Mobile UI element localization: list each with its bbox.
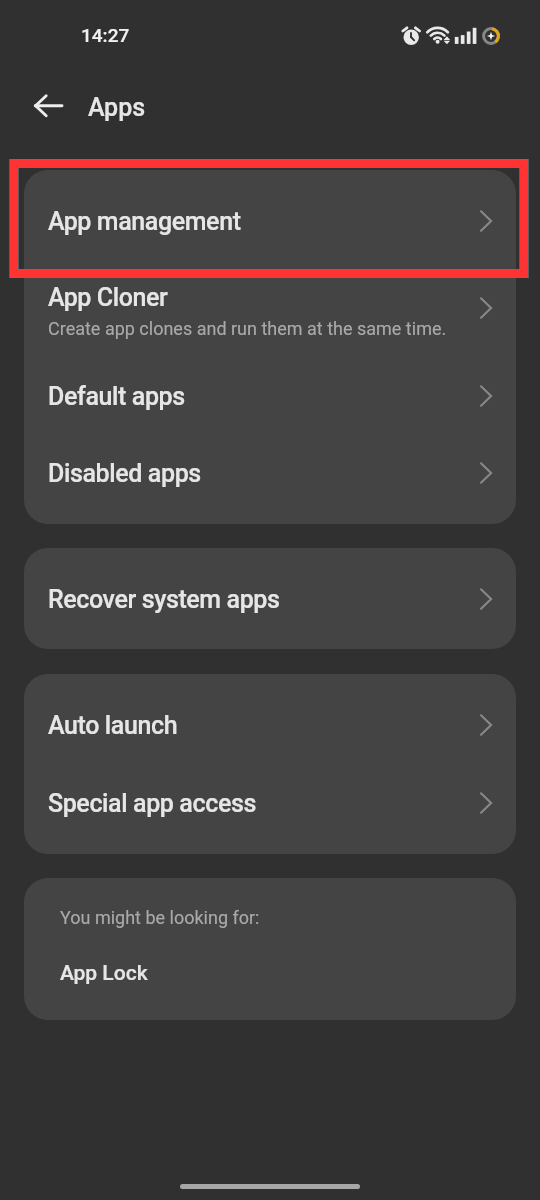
staticText: Recover system apps [48,585,280,614]
staticText: App Lock [60,961,148,986]
button[interactable]: Back [24,81,72,129]
staticText: Create app clones and run them at the sa… [48,318,447,339]
button[interactable]: App Cloner [24,260,516,355]
staticText: You might be looking for: [60,907,260,928]
staticText: App management [48,207,241,236]
button[interactable]: Special app access [24,764,516,842]
staticText: Special app access [48,789,256,818]
button[interactable]: Auto launch [24,686,516,764]
button[interactable]: You might be looking for: [24,878,516,1020]
button[interactable]: Recover system apps [24,560,516,638]
staticText: 14:27 [81,24,130,46]
staticText: Disabled apps [48,459,201,488]
staticText: App Cloner [48,283,168,312]
button[interactable]: Default apps [24,357,516,435]
staticText: Default apps [48,382,185,411]
staticText: Auto launch [48,711,178,740]
button[interactable]: Disabled apps [24,434,516,512]
staticText: Apps [88,93,146,122]
button[interactable]: App management [24,182,516,260]
